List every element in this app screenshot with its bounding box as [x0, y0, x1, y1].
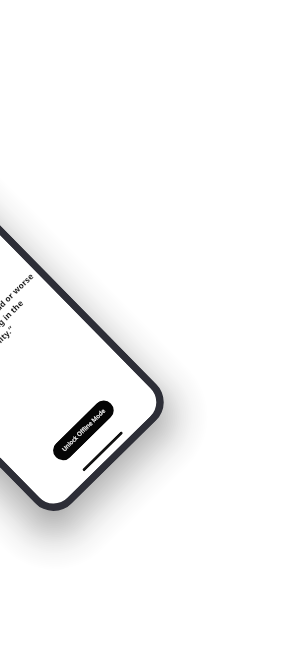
button[interactable]: Unlock Offline Mode	[49, 396, 118, 464]
staticText: “We have all been somewhere with bad or …	[0, 262, 52, 384]
staticText: Unlock Offline Mode	[60, 407, 107, 453]
